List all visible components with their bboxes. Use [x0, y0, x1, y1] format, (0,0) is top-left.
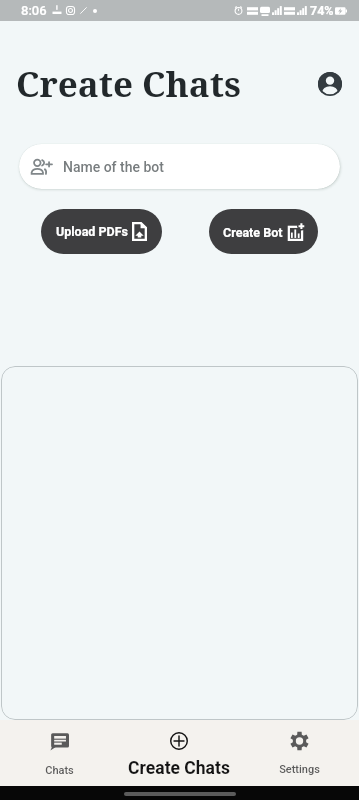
- button[interactable]: Account: [317, 71, 343, 97]
- staticText: Create Chats: [16, 60, 241, 108]
- staticText: Upload PDFs: [56, 224, 128, 239]
- staticText: Settings: [279, 763, 320, 776]
- staticText: 74%: [310, 3, 334, 18]
- staticText: Create Bot: [223, 225, 283, 240]
- button[interactable]: Name of the bot: [19, 144, 340, 189]
- staticText: Name of the bot: [63, 159, 164, 175]
- staticText: Chats: [45, 764, 74, 777]
- button[interactable]: Settings: [239, 720, 359, 786]
- button[interactable]: Create Chats: [119, 720, 239, 786]
- button[interactable]: Chats: [0, 720, 119, 786]
- button[interactable]: Upload PDFs: [41, 209, 162, 254]
- button[interactable]: Create Bot: [209, 209, 318, 254]
- staticText: 8:06: [21, 3, 47, 18]
- staticText: Create Chats: [128, 758, 230, 779]
